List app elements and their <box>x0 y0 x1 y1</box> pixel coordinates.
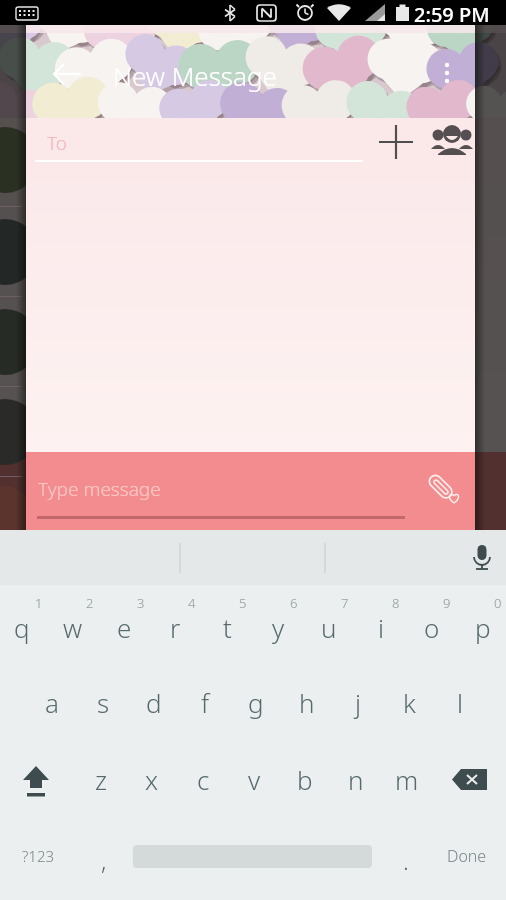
button[interactable] <box>429 51 465 95</box>
button[interactable]: 5 <box>219 583 267 623</box>
staticText: New Message <box>113 58 277 93</box>
button[interactable]: 6 <box>270 583 318 623</box>
button[interactable]: n <box>332 759 380 799</box>
button[interactable]: s <box>79 682 127 722</box>
staticText: m <box>395 762 419 797</box>
button[interactable] <box>14 756 60 802</box>
staticText: k <box>403 685 416 720</box>
button[interactable] <box>420 470 466 516</box>
button[interactable]: h <box>283 682 331 722</box>
button[interactable]: c <box>179 759 227 799</box>
button[interactable]: f <box>181 682 229 722</box>
button[interactable]: e <box>100 607 148 647</box>
staticText: 4 <box>188 594 196 612</box>
staticText: l <box>457 685 464 720</box>
staticText: Done <box>447 845 487 867</box>
button[interactable]: 4 <box>168 583 216 623</box>
button[interactable]: 0 <box>474 583 506 623</box>
button[interactable]: d <box>130 682 178 722</box>
button[interactable]: j <box>334 682 382 722</box>
staticText: 1 <box>35 594 43 612</box>
button[interactable]: m <box>383 759 431 799</box>
staticText: a <box>45 685 59 720</box>
button[interactable]: 2 <box>66 583 114 623</box>
button[interactable]: i <box>357 607 405 647</box>
button[interactable]: , <box>80 840 128 880</box>
staticText: x <box>145 762 159 797</box>
staticText: t <box>223 610 232 645</box>
staticText: j <box>355 685 362 720</box>
staticText: o <box>424 610 440 645</box>
staticText: i <box>378 610 385 645</box>
button[interactable]: . <box>382 840 430 880</box>
button[interactable]: Type message <box>0 452 506 530</box>
button[interactable]: k <box>385 682 433 722</box>
button[interactable]: Done <box>443 836 491 876</box>
button[interactable] <box>374 120 418 164</box>
button[interactable]: x <box>128 759 176 799</box>
button[interactable]: 3 <box>117 583 165 623</box>
button[interactable]: p <box>459 607 506 647</box>
staticText: e <box>117 610 132 645</box>
button[interactable]: g <box>232 682 280 722</box>
button[interactable] <box>44 52 88 96</box>
button[interactable]: o <box>408 607 456 647</box>
button[interactable] <box>430 120 474 164</box>
button[interactable]: u <box>305 607 353 647</box>
button[interactable] <box>460 535 504 579</box>
staticText: b <box>297 762 313 797</box>
staticText: h <box>299 685 315 720</box>
staticText: ?123 <box>22 846 55 866</box>
button[interactable]: q <box>0 607 46 647</box>
staticText: y <box>272 610 285 645</box>
button[interactable]: v <box>230 759 278 799</box>
button[interactable]: a <box>28 682 76 722</box>
button[interactable]: r <box>151 607 199 647</box>
staticText: u <box>321 610 337 645</box>
staticText: c <box>197 762 210 797</box>
button[interactable]: 8 <box>372 583 420 623</box>
staticText: 3 <box>137 594 145 612</box>
staticText: Type message <box>38 476 161 502</box>
staticText: w <box>63 610 83 645</box>
staticText: 0 <box>494 594 502 612</box>
button[interactable]: t <box>203 607 251 647</box>
button[interactable]: y <box>254 607 302 647</box>
staticText: 2 <box>86 594 94 612</box>
staticText: z <box>95 762 108 797</box>
button[interactable]: l <box>436 682 484 722</box>
staticText: 8 <box>392 594 400 612</box>
staticText: v <box>248 762 261 797</box>
staticText: . <box>403 844 409 877</box>
button[interactable]: w <box>49 607 97 647</box>
staticText: n <box>348 762 364 797</box>
button[interactable]: ?123 <box>14 836 62 876</box>
staticText: 6 <box>290 594 298 612</box>
button[interactable]: 9 <box>423 583 471 623</box>
staticText: s <box>97 685 110 720</box>
staticText: 2:59 PM <box>414 1 490 26</box>
staticText: 5 <box>239 594 247 612</box>
button[interactable] <box>448 756 494 802</box>
staticText: r <box>170 610 181 645</box>
staticText: To <box>47 130 67 156</box>
staticText: g <box>248 685 264 720</box>
button[interactable]: 7 <box>321 583 369 623</box>
button[interactable]: b <box>281 759 329 799</box>
button[interactable]: z <box>77 759 125 799</box>
staticText: 9 <box>443 594 451 612</box>
staticText: q <box>14 610 30 645</box>
staticText: 7 <box>341 594 349 612</box>
staticText: p <box>475 610 491 645</box>
button[interactable]: 1 <box>15 583 63 623</box>
staticText: , <box>101 844 107 877</box>
staticText: d <box>146 685 162 720</box>
staticText: f <box>201 685 210 720</box>
